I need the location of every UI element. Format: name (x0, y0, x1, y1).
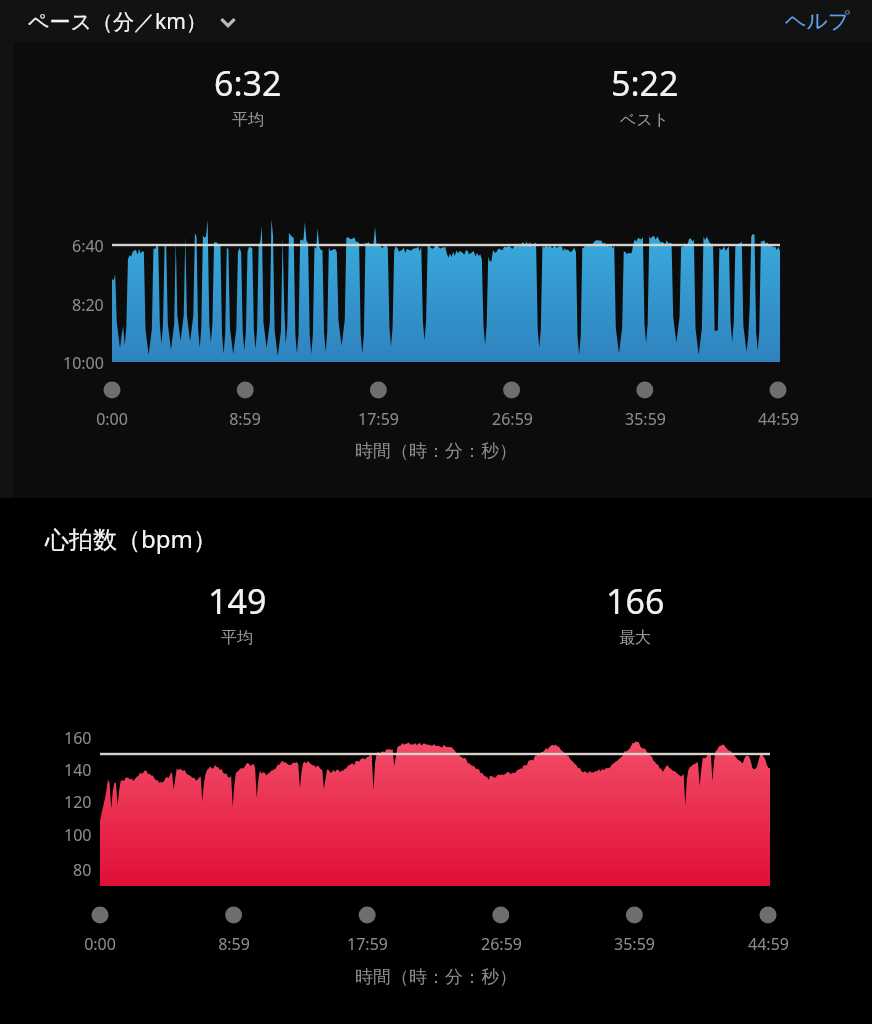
staticText: 166 (606, 578, 665, 624)
staticText: 44:59 (758, 408, 799, 430)
staticText: 6:40 (72, 235, 104, 257)
staticText: 100 (64, 824, 92, 846)
staticText: 5:22 (611, 60, 679, 106)
staticText: ペース（分／km） (28, 7, 207, 36)
staticText: 平均 (221, 628, 253, 648)
staticText: 時間（時：分：秒） (355, 440, 517, 463)
staticText: 35:59 (614, 933, 655, 955)
staticText: 平均 (232, 110, 264, 130)
staticText: 26:59 (481, 933, 522, 955)
staticText: 17:59 (358, 408, 399, 430)
staticText: 17:59 (347, 933, 388, 955)
staticText: 6:32 (214, 60, 282, 106)
staticText: 時間（時：分：秒） (355, 966, 517, 989)
staticText: 149 (208, 578, 267, 624)
staticText: 80 (73, 859, 92, 881)
staticText: 160 (64, 727, 92, 749)
staticText: ベスト (620, 110, 670, 130)
staticText: 44:59 (748, 933, 789, 955)
staticText: 0:00 (96, 408, 128, 430)
staticText: 10:00 (63, 352, 104, 374)
staticText: 最大 (619, 628, 651, 648)
staticText: 0:00 (84, 933, 116, 955)
staticText: 8:59 (229, 408, 261, 430)
staticText: 心拍数（bpm） (45, 522, 217, 555)
staticText: ヘルプ (785, 8, 850, 34)
staticText: 35:59 (625, 408, 666, 430)
staticText: 140 (64, 759, 92, 781)
button[interactable]: ヘルプ (781, 4, 854, 38)
staticText: 26:59 (492, 408, 533, 430)
button[interactable]: ペース（分／km） (28, 7, 239, 36)
staticText: 8:20 (72, 294, 104, 316)
staticText: 120 (64, 791, 92, 813)
staticText: 8:59 (218, 933, 250, 955)
